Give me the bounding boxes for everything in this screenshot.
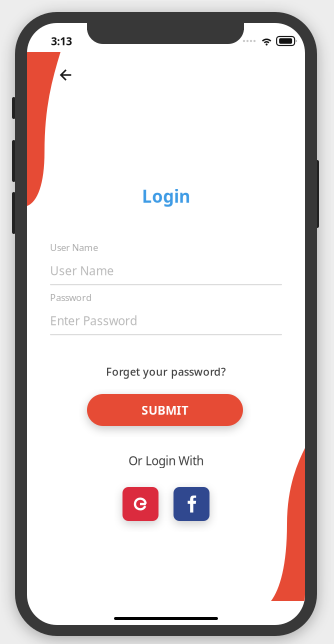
button[interactable]: Continue with Facebook	[173, 487, 209, 521]
button[interactable]: Back	[49, 58, 83, 92]
button[interactable]: Continue with Google	[122, 487, 158, 521]
staticText: SUBMIT	[141, 402, 188, 418]
staticText: Password	[50, 291, 92, 304]
button[interactable]: SUBMIT	[87, 394, 243, 426]
button[interactable]: Forget your password?	[27, 364, 305, 379]
staticText: User Name	[50, 262, 114, 278]
staticText: User Name	[50, 241, 98, 254]
staticText: Forget your password?	[106, 364, 226, 379]
staticText: Or Login With	[128, 452, 203, 468]
staticText: Login	[142, 184, 190, 207]
staticText: Enter Password	[50, 312, 137, 328]
staticText: 3:13	[51, 34, 72, 48]
